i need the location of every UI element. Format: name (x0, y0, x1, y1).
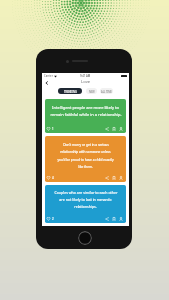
staticText: ALL TIME (101, 90, 112, 93)
button[interactable]: NEW (86, 88, 97, 94)
staticText: remain faithful while in a relationship. (50, 112, 122, 117)
staticText: you'd be proud to have a child exactly (57, 158, 114, 162)
button[interactable]: Share (105, 127, 109, 131)
button[interactable]: Profile (119, 127, 123, 131)
button[interactable]: Don't marry or get in a serious (45, 136, 126, 182)
button[interactable]: Back (43, 79, 50, 86)
staticText: Carrier (44, 74, 53, 78)
staticText: TRENDING (64, 90, 77, 93)
staticText: relationships. (74, 204, 97, 209)
staticText: Intelligent people are more likely to (52, 105, 119, 110)
button[interactable]: Like (46, 216, 51, 221)
button[interactable]: Intelligent people are more likely to (45, 99, 126, 133)
button[interactable]: Profile (119, 217, 123, 221)
staticText: 1 (52, 127, 54, 131)
button[interactable]: Save (112, 127, 116, 131)
staticText: relationship with someone unless (60, 150, 111, 154)
staticText: 4 (52, 176, 54, 180)
button[interactable]: Like (46, 126, 51, 131)
staticText: NEW (89, 90, 95, 93)
button[interactable]: Couples who are similar to each other (45, 185, 126, 223)
button[interactable]: Save (112, 176, 116, 180)
button[interactable]: Share (105, 217, 109, 221)
staticText: Love (81, 79, 91, 85)
staticText: are not likely to last in romantic (59, 197, 112, 202)
button[interactable]: Save (112, 217, 116, 221)
staticText: 9:41 AM (80, 74, 91, 78)
button[interactable]: TRENDING (58, 88, 82, 94)
staticText: Don't marry or get in a serious (63, 143, 109, 147)
staticText: Couples who are similar to each other (54, 190, 118, 195)
staticText: 2 (52, 217, 54, 221)
staticText: like them. (78, 165, 93, 169)
button[interactable]: ALL TIME (100, 88, 113, 94)
button[interactable]: Like (46, 175, 51, 180)
button[interactable]: Profile (119, 176, 123, 180)
button[interactable]: Share (105, 176, 109, 180)
